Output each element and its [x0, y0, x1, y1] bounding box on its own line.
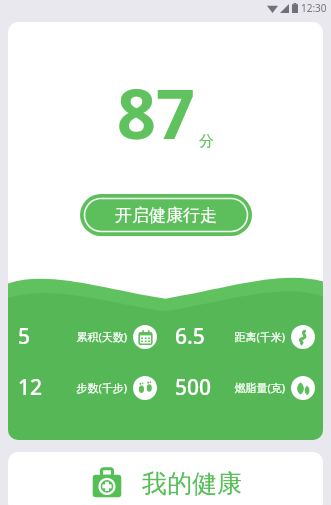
button[interactable]: 12 — [18, 373, 157, 402]
staticText: 500 — [175, 373, 212, 402]
button[interactable]: 500 — [175, 373, 315, 402]
staticText: 5 — [18, 322, 31, 351]
staticText: 步数(千步) — [64, 380, 127, 395]
other: 累积(天数) — [133, 325, 157, 349]
staticText: 距离(千米) — [221, 329, 285, 344]
button[interactable]: 开启健康行走 — [80, 194, 252, 236]
staticText: 12:30 — [301, 1, 327, 15]
staticText: 累积(天数) — [64, 329, 127, 344]
staticText: 87 — [117, 66, 195, 159]
staticText: 燃脂量(克) — [221, 380, 285, 395]
staticText: 我的健康 — [142, 468, 242, 499]
staticText: 开启健康行走 — [115, 205, 217, 226]
staticText: 12 — [18, 373, 43, 402]
other: 距离(千米) — [291, 325, 315, 349]
other: 步数(千步) — [133, 376, 157, 400]
other: 燃脂量(克) — [291, 376, 315, 400]
staticText: 分 — [199, 132, 214, 151]
staticText: 6.5 — [175, 322, 205, 351]
button[interactable]: 5 — [18, 322, 157, 351]
button[interactable]: 我的健康 — [8, 452, 323, 505]
button[interactable]: 6.5 — [175, 322, 315, 351]
